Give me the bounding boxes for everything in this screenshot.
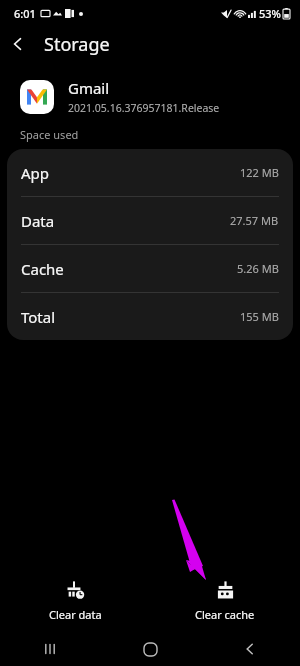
button[interactable]: App [7,149,293,197]
button[interactable]: Data [7,197,293,245]
button[interactable]: Home [100,632,200,666]
staticText: Storage [44,32,110,57]
staticText: 155 MB [240,309,279,324]
staticText: 53% [259,6,281,21]
staticText: 122 MB [240,165,279,180]
button[interactable]: Cache [7,245,293,293]
staticText: 6:01 [14,6,36,21]
staticText: 5.26 MB [237,261,279,276]
button[interactable]: Total [7,293,293,340]
staticText: Total [21,307,56,327]
button[interactable]: Back [0,26,36,62]
button[interactable]: Recents [0,632,100,666]
staticText: Gmail [68,78,110,98]
button[interactable]: Back [200,632,300,666]
staticText: Clear data [49,607,102,622]
staticText: Space used [20,127,79,142]
button[interactable]: Clear data [0,570,150,632]
button[interactable]: Clear cache [150,570,300,632]
staticText: 2021.05.16.376957181.Release [68,101,220,115]
staticText: Cache [21,259,64,279]
staticText: Data [21,211,55,231]
staticText: 27.57 MB [230,213,279,228]
staticText: Clear cache [195,607,255,622]
staticText: App [21,163,50,183]
